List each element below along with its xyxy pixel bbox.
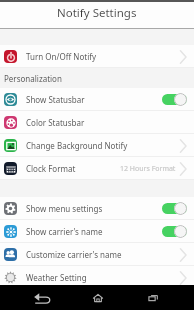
staticText: Notify Settings <box>57 5 137 21</box>
button[interactable]: Recents <box>125 285 180 310</box>
button[interactable]: Back <box>15 285 70 310</box>
staticText: Color Statusbar <box>26 117 85 128</box>
staticText: Show Statusbar <box>26 94 85 105</box>
staticText: Personalization <box>4 73 62 84</box>
button[interactable]: Clock Format <box>0 157 194 180</box>
button[interactable]: Change Background Notify <box>0 134 194 157</box>
staticText: Show menu settings <box>26 203 103 214</box>
staticText: 12 Hours Format <box>120 164 176 174</box>
staticText: Customize carrier's name <box>26 249 122 260</box>
staticText: Turn On/Off Notify <box>26 51 97 62</box>
button[interactable]: Customize carrier's name <box>0 243 194 266</box>
staticText: Weather Setting <box>26 272 87 283</box>
staticText: Clock Format <box>26 163 76 174</box>
staticText: Change Background Notify <box>26 140 128 151</box>
button[interactable]: Show menu settings <box>0 197 194 220</box>
button[interactable]: Color Statusbar <box>0 111 194 134</box>
button[interactable]: Weather Setting <box>0 266 194 289</box>
button[interactable]: Turn On/Off Notify <box>0 45 194 68</box>
button[interactable]: Home <box>70 285 125 310</box>
button[interactable]: Show carrier's name <box>0 220 194 243</box>
button[interactable]: Show Statusbar <box>0 88 194 111</box>
staticText: Show carrier's name <box>26 226 103 237</box>
